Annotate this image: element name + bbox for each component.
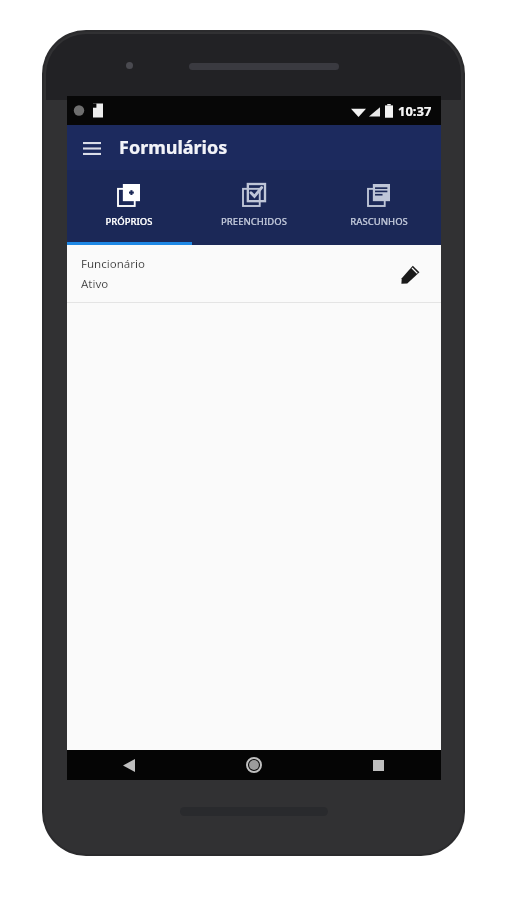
staticText: Ativo [81,276,109,292]
button[interactable]: PRÓPRIOS [67,170,191,242]
staticText: 10:37 [398,102,432,120]
button[interactable]: Recent apps [316,750,441,780]
button[interactable]: Back [67,750,191,780]
button[interactable]: Open navigation menu [75,131,109,165]
staticText: PRÓPRIOS [105,215,153,228]
staticText: RASCUNHOS [350,215,408,228]
button[interactable]: Home [191,750,316,780]
staticText: PREENCHIDOS [221,215,287,228]
staticText: Formulários [119,135,228,160]
button[interactable]: RASCUNHOS [316,170,441,242]
button[interactable]: PREENCHIDOS [191,170,316,242]
button[interactable]: Edit form [393,257,427,291]
button[interactable]: Funcionário [67,245,441,302]
staticText: Funcionário [81,256,145,272]
